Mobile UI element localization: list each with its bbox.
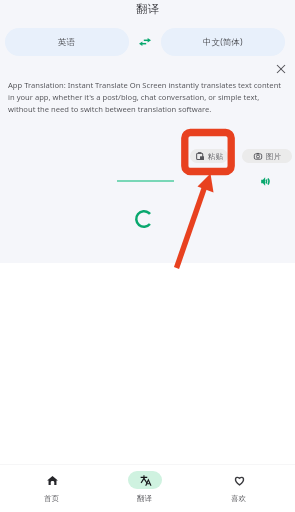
button[interactable]: 英语 bbox=[5, 28, 129, 56]
staticText: 翻译 bbox=[136, 2, 159, 16]
staticText: 粘贴 bbox=[208, 152, 223, 161]
staticText: 中文(简体) bbox=[203, 36, 243, 48]
staticText: App Translation: Instant Translate On Sc… bbox=[8, 80, 285, 114]
button[interactable]: Close bbox=[273, 61, 289, 77]
button[interactable]: Swap languages bbox=[131, 28, 159, 56]
staticText: 首页 bbox=[44, 494, 60, 504]
button[interactable]: Speak bbox=[258, 174, 272, 188]
staticText: 图片 bbox=[266, 152, 281, 161]
staticText: 英语 bbox=[58, 37, 76, 48]
staticText: 翻译 bbox=[137, 494, 153, 504]
button[interactable]: 翻译 bbox=[98, 464, 192, 504]
button[interactable]: 粘贴 bbox=[190, 149, 228, 163]
button[interactable]: 喜欢 bbox=[192, 464, 286, 504]
staticText: 喜欢 bbox=[231, 494, 247, 504]
button[interactable]: 首页 bbox=[5, 464, 98, 504]
button[interactable]: 图片 bbox=[242, 149, 292, 163]
button[interactable]: 中文(简体) bbox=[161, 28, 285, 56]
